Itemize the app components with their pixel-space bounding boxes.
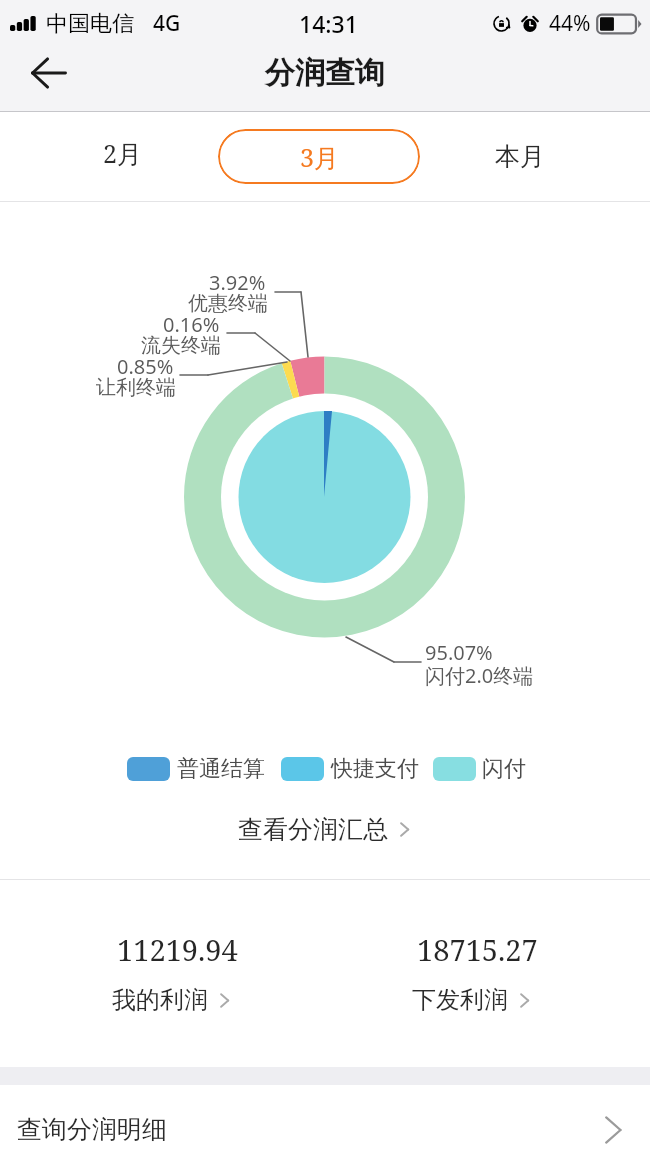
staticText: 快捷支付 bbox=[331, 755, 419, 783]
button[interactable]: 普通结算 bbox=[127, 755, 265, 783]
staticText: 44% bbox=[549, 9, 591, 38]
staticText: 95.07% bbox=[425, 639, 493, 666]
button[interactable]: Back bbox=[18, 44, 80, 102]
button[interactable]: 18715.27 bbox=[327, 930, 627, 970]
staticText: 0.85% bbox=[117, 353, 174, 380]
staticText: 查询分润明细 bbox=[17, 1114, 167, 1145]
staticText: 14:31 bbox=[299, 8, 358, 39]
staticText: 0.16% bbox=[163, 311, 220, 338]
staticText: 闪付 bbox=[482, 755, 526, 783]
staticText: 优惠终端 bbox=[188, 291, 268, 316]
staticText: 普通结算 bbox=[177, 755, 265, 783]
staticText: 中国电信 bbox=[46, 10, 134, 38]
staticText: 下发利润 bbox=[412, 985, 508, 1015]
staticText: 查看分润汇总 bbox=[238, 814, 388, 845]
button[interactable]: 快捷支付 bbox=[281, 755, 419, 783]
staticText: 闪付2.0终端 bbox=[425, 662, 534, 689]
staticText: 本月 bbox=[495, 141, 545, 172]
staticText: 4G bbox=[153, 9, 181, 38]
button[interactable]: 闪付 bbox=[433, 755, 526, 783]
button[interactable]: 本月 bbox=[463, 112, 577, 201]
staticText: 我的利润 bbox=[112, 985, 208, 1015]
button[interactable]: 11219.94 bbox=[27, 930, 327, 970]
staticText: 让利终端 bbox=[96, 375, 176, 400]
button[interactable]: 2月 bbox=[64, 108, 180, 197]
staticText: 11219.94 bbox=[117, 930, 238, 969]
button[interactable]: 查询分润明细 bbox=[0, 1085, 650, 1156]
staticText: 2月 bbox=[103, 136, 142, 170]
staticText: 3月 bbox=[300, 140, 339, 174]
staticText: 流失终端 bbox=[141, 333, 221, 358]
button[interactable]: 3月 bbox=[218, 129, 420, 184]
button[interactable]: 下发利润 bbox=[322, 985, 622, 1015]
staticText: 分润查询 bbox=[265, 54, 385, 92]
button[interactable]: 查看分润汇总 bbox=[222, 806, 429, 853]
button[interactable]: 我的利润 bbox=[22, 985, 322, 1015]
staticText: 18715.27 bbox=[417, 930, 538, 969]
staticText: 3.92% bbox=[209, 269, 266, 296]
